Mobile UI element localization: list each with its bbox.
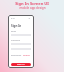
staticText: Email: [11, 30, 17, 33]
staticText: SIGN IN: [17, 63, 25, 66]
staticText: ..ıl: [28, 17, 31, 20]
button[interactable]: SIGN IN: [11, 63, 31, 66]
staticText: Remember: [11, 54, 22, 57]
staticText: mobile app design: [19, 6, 46, 10]
staticText: Sign In: [11, 24, 22, 28]
staticText: Password: [11, 39, 21, 42]
staticText: Sign In Screen UI: [15, 1, 49, 6]
staticText: Forgot?: [23, 54, 31, 57]
staticText: 9:41: [11, 17, 15, 20]
